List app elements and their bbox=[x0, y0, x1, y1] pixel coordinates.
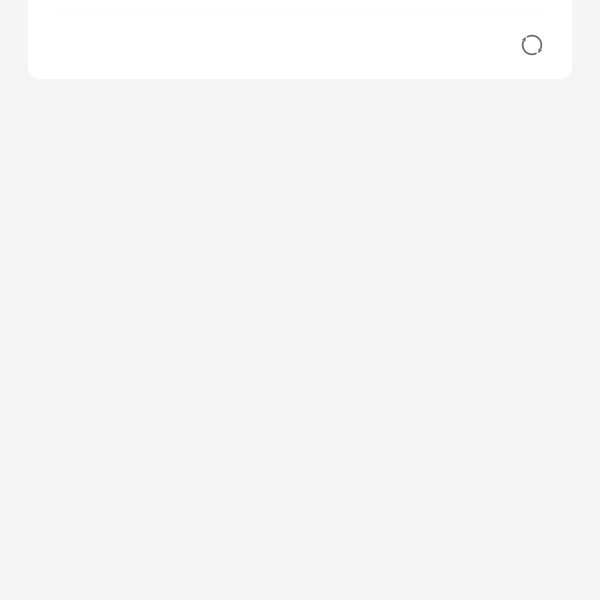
button[interactable]: Refresh bbox=[510, 23, 554, 67]
